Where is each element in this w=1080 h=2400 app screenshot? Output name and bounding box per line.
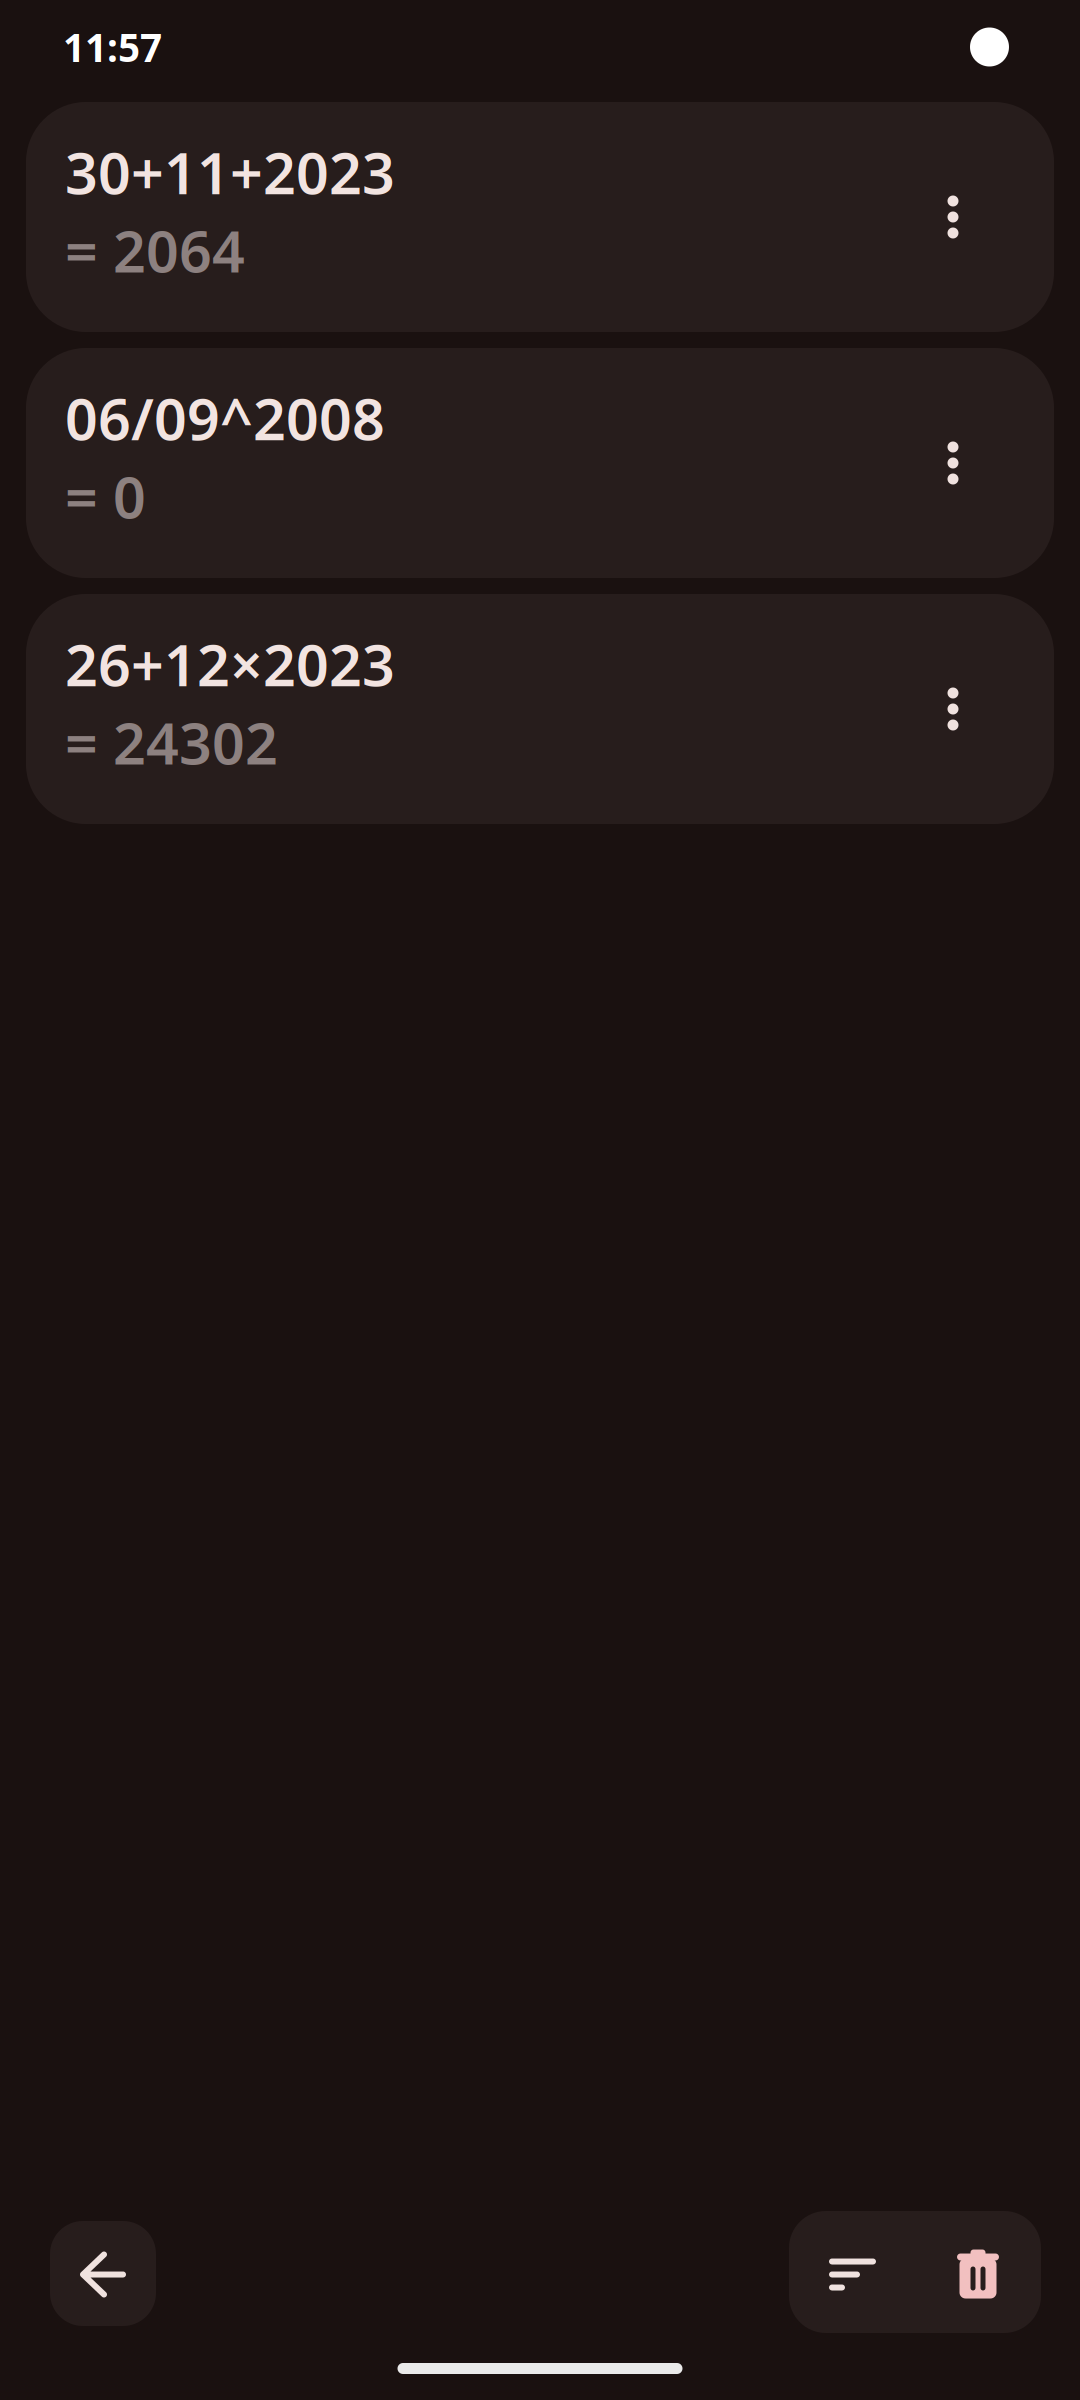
staticText: = 0 — [65, 458, 146, 534]
staticText: = 24302 — [65, 704, 278, 780]
button[interactable]: 26+12×2023 — [26, 594, 1054, 824]
button[interactable]: 30+11+2023 — [26, 102, 1054, 332]
button[interactable]: Sort history — [789, 2211, 915, 2333]
staticText: 11:57 — [63, 21, 162, 73]
button[interactable]: Back — [50, 2211, 156, 2333]
staticText: = 2064 — [65, 212, 245, 288]
button[interactable]: Clear history — [915, 2211, 1041, 2333]
button[interactable]: 06/09^2008 — [26, 348, 1054, 578]
button[interactable]: More options — [905, 348, 1054, 578]
staticText: 26+12×2023 — [65, 626, 395, 702]
staticText: 30+11+2023 — [65, 134, 395, 210]
button[interactable]: More options — [905, 102, 1054, 332]
staticText: 06/09^2008 — [65, 380, 385, 456]
button[interactable]: More options — [905, 594, 1054, 824]
